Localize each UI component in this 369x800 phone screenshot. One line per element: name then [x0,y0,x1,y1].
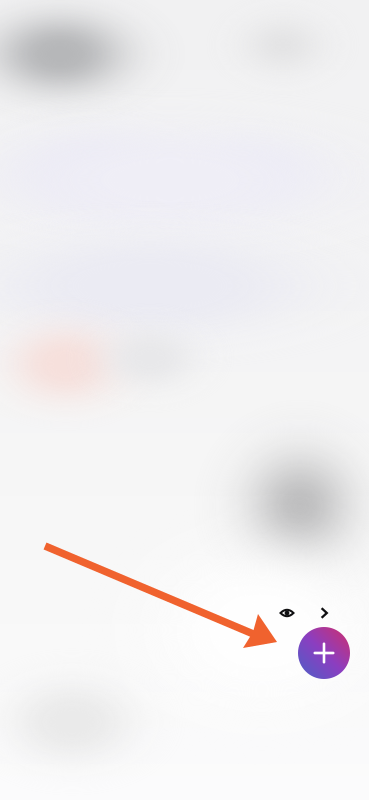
button[interactable]: Preview [272,598,302,628]
button[interactable]: New note [298,627,350,679]
button[interactable]: Expand [309,598,339,628]
